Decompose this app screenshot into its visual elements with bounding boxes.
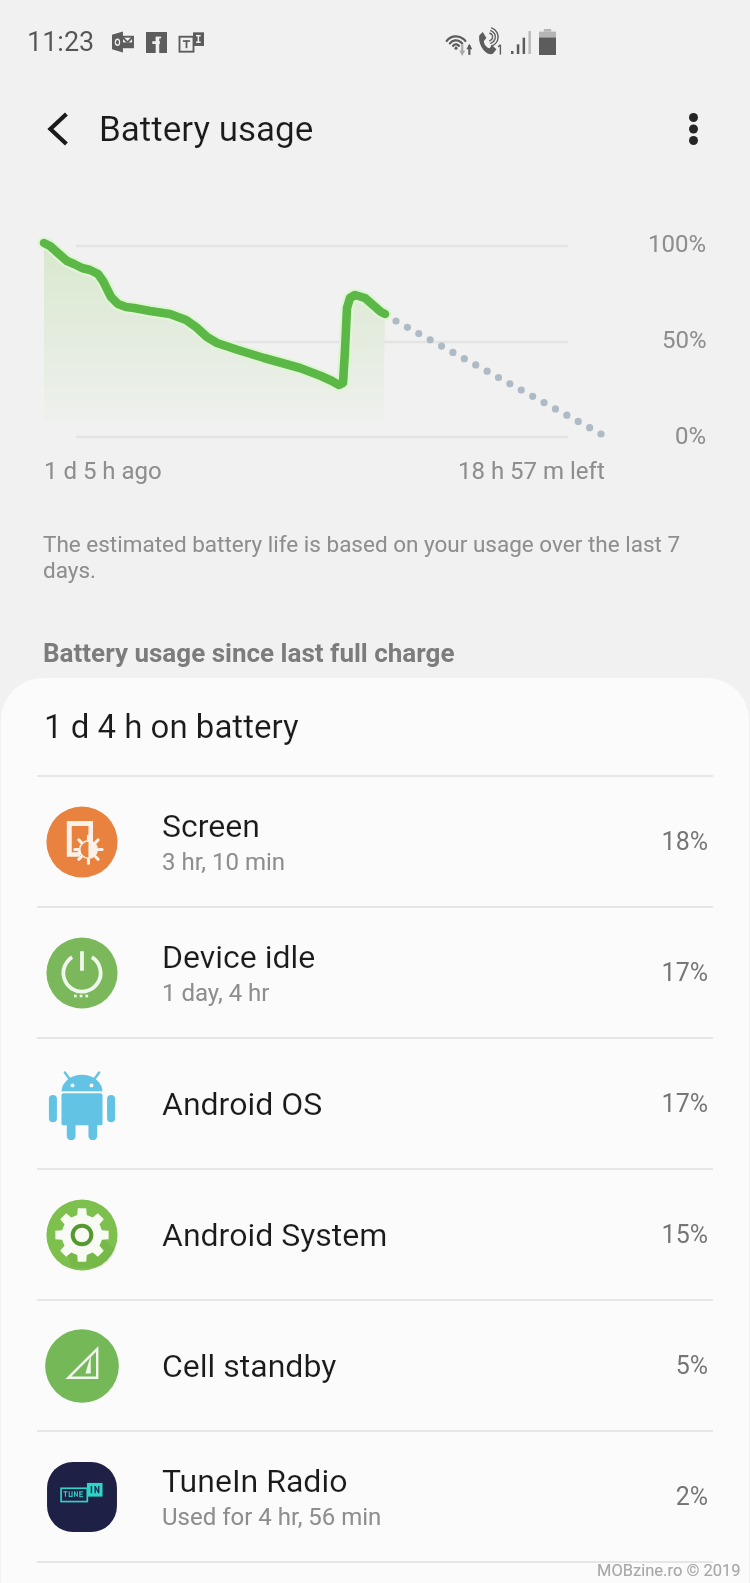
staticText: 1 day, 4 hr [162,979,270,1007]
staticText: 17% [661,1089,708,1118]
staticText: Android System [162,1216,388,1254]
button[interactable]: Android System [1,1170,749,1299]
staticText: 17% [661,958,708,987]
staticText: 50% [662,326,707,354]
staticText: 11:23 [27,26,95,58]
staticText: Used for 4 hr, 56 min [162,1503,382,1531]
staticText: 1 d 4 h on battery [44,707,299,746]
staticText: MOBzine.ro © 2019 [597,1561,741,1580]
button[interactable]: TuneIn Radio [1,1432,749,1561]
staticText: 0% [675,422,707,450]
staticText: Device idle [162,938,316,976]
button[interactable]: Screen [1,777,749,906]
staticText: 1 d 5 h ago [44,457,162,485]
staticText: The estimated battery life is based on y… [43,531,695,583]
staticText: 15% [661,1220,708,1249]
staticText: 5% [675,1351,708,1380]
staticText: Android OS [162,1085,323,1123]
button[interactable]: Android OS [1,1039,749,1168]
staticText: 18 h 57 m left [458,457,605,485]
button[interactable]: Cell standby [1,1301,749,1430]
staticText: 3 hr, 10 min [162,848,286,876]
button[interactable]: Device idle [1,908,749,1037]
staticText: Screen [162,807,260,845]
staticText: Cell standby [162,1347,337,1385]
staticText: 100% [648,230,707,258]
staticText: Battery usage [99,109,314,150]
staticText: TuneIn Radio [162,1462,348,1500]
staticText: 2% [675,1482,708,1511]
button[interactable]: More options [658,94,728,164]
button[interactable]: Back [22,93,94,165]
staticText: 18% [661,827,708,856]
staticText: Battery usage since last full charge [43,638,455,668]
